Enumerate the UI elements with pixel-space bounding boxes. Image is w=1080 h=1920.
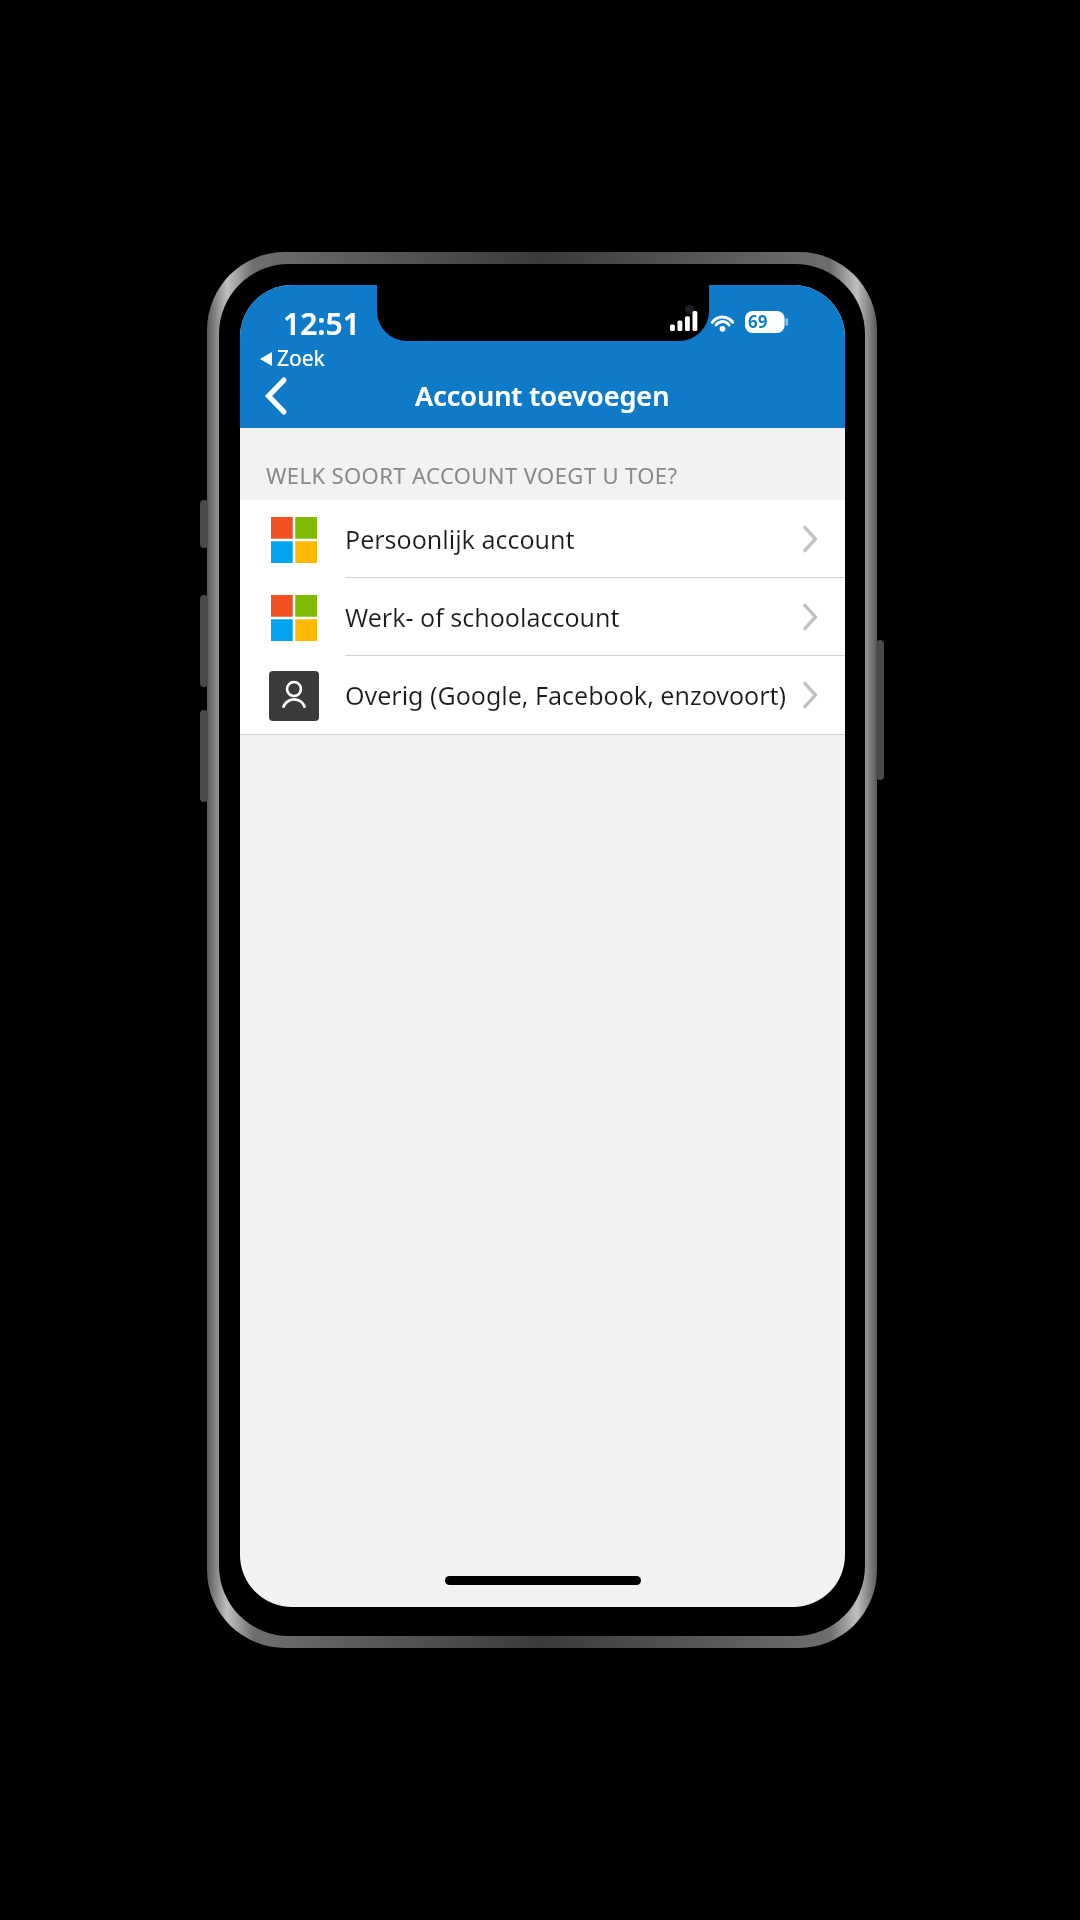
button[interactable]: Overig (Google, Facebook, enzovoort) <box>240 656 845 734</box>
staticText: WELK SOORT ACCOUNT VOEGT U TOE? <box>266 460 678 490</box>
staticText: Werk- of schoolaccount <box>345 600 620 634</box>
staticText: 69 <box>748 310 768 333</box>
staticText: Account toevoegen <box>415 377 670 414</box>
button[interactable]: Persoonlijk account <box>240 500 845 578</box>
button[interactable]: Terug <box>240 363 312 428</box>
staticText: Zoek <box>277 344 325 373</box>
staticText: Persoonlijk account <box>345 522 575 556</box>
button[interactable]: Werk- of schoolaccount <box>240 578 845 656</box>
button[interactable]: Zoek <box>257 342 328 375</box>
staticText: Overig (Google, Facebook, enzovoort) <box>345 678 787 712</box>
staticText: 12:51 <box>283 303 360 344</box>
